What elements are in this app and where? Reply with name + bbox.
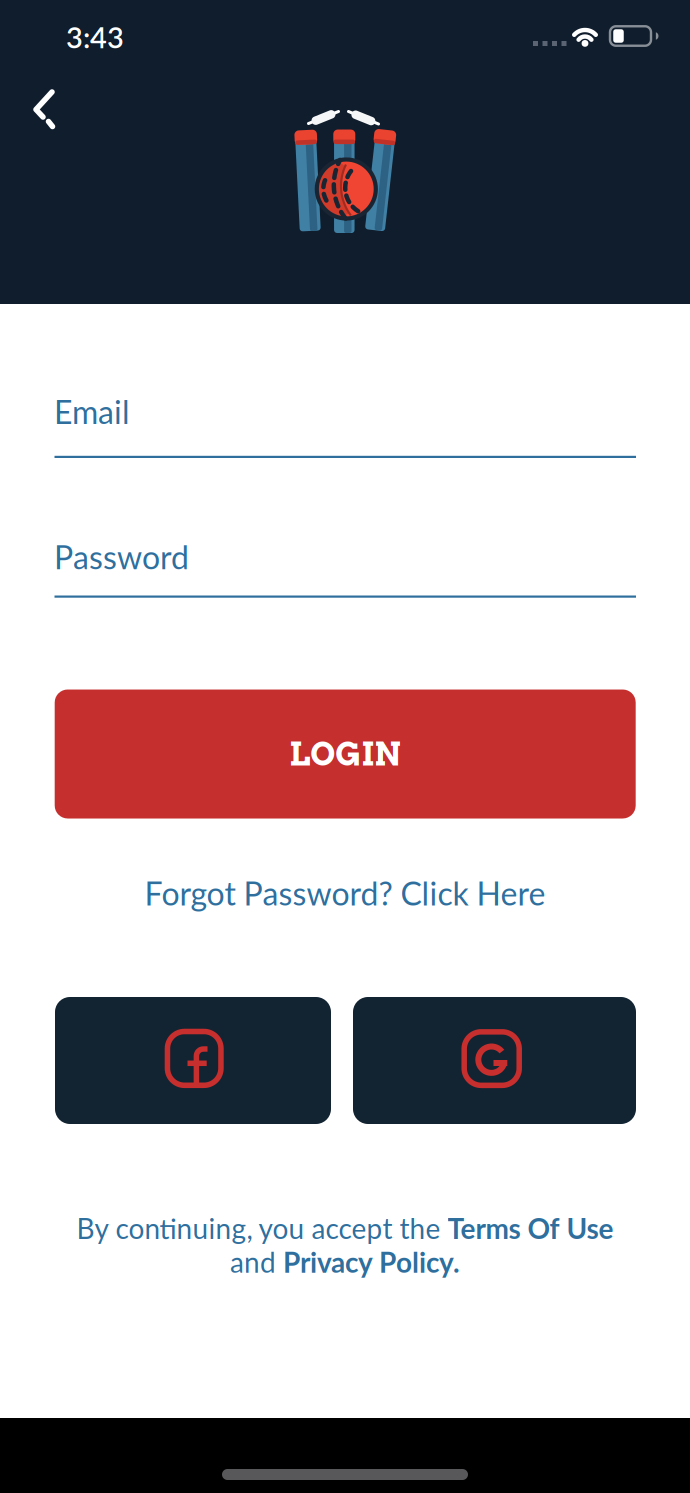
button[interactable]: Forgot Password? Click Here [144,874,545,912]
button[interactable]: By continuing, you accept the Terms Of U… [76,1212,613,1278]
button[interactable]: LOGIN [55,689,636,818]
staticText: Forgot Password? Click Here [144,874,545,912]
staticText: Password [54,538,189,576]
staticText: and Privacy Policy. [230,1245,460,1278]
staticText: LOGIN [289,735,401,773]
staticText: By continuing, you accept the Terms Of U… [76,1212,613,1244]
button[interactable] [24,84,64,134]
button[interactable] [353,997,636,1124]
button[interactable] [55,997,331,1124]
button[interactable]: Email [54,390,636,460]
button[interactable]: Password [54,530,636,600]
staticText: Email [54,392,130,431]
staticText: 3:43 [66,20,124,54]
